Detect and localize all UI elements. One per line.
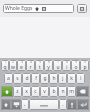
button[interactable]: 3 [17, 60, 26, 71]
staticText: n [61, 88, 65, 95]
button[interactable]: Enter [77, 99, 89, 110]
staticText: 3 [21, 60, 23, 64]
staticText: p [83, 64, 87, 71]
button[interactable]: d [22, 73, 31, 84]
button[interactable]: 5 [35, 60, 44, 71]
staticText: 7 [57, 60, 59, 64]
button[interactable]: 9 [71, 60, 80, 71]
staticText: 2 [12, 60, 14, 64]
button[interactable]: 7 [53, 60, 62, 71]
button[interactable]: m [67, 86, 76, 97]
staticText: e [20, 64, 23, 71]
button[interactable]: h [49, 73, 58, 84]
staticText: g [43, 75, 47, 82]
button[interactable]: . [59, 99, 67, 110]
staticText: o [74, 64, 78, 71]
staticText: 8 [66, 60, 68, 64]
staticText: 6 [48, 60, 50, 64]
staticText: 4 [30, 60, 32, 64]
staticText: y [47, 64, 50, 71]
button[interactable]: x [22, 86, 31, 97]
staticText: . [62, 101, 64, 108]
button[interactable]: Symbols [1, 99, 11, 110]
button[interactable]: a [4, 73, 13, 84]
button[interactable]: 8 [62, 60, 71, 71]
staticText: w [11, 64, 15, 71]
staticText: f [35, 75, 37, 82]
button[interactable]: s [13, 73, 22, 84]
staticText: i [66, 64, 68, 71]
staticText: l [80, 75, 82, 82]
button[interactable]: b [49, 86, 58, 97]
staticText: 5 [39, 60, 41, 64]
button[interactable]: 2 [9, 60, 17, 71]
button[interactable]: Space [29, 99, 59, 110]
staticText: a [7, 75, 10, 82]
button[interactable]: f [31, 73, 40, 84]
button[interactable]: z [13, 86, 22, 97]
staticText: x [25, 88, 28, 95]
staticText: c [34, 88, 37, 95]
button[interactable]: Change keyboard [11, 99, 21, 110]
staticText: , [24, 101, 26, 108]
button[interactable]: , [21, 99, 29, 110]
button[interactable]: k [67, 73, 76, 84]
button[interactable]: c [31, 86, 40, 97]
button[interactable]: 6 [44, 60, 53, 71]
button[interactable]: Voice input [67, 99, 77, 110]
button[interactable]: l [76, 73, 85, 84]
button[interactable]: Whole Eggs [3, 4, 74, 13]
staticText: v [43, 88, 46, 95]
staticText: k [70, 75, 73, 82]
staticText: z [16, 88, 19, 95]
staticText: s [16, 75, 19, 82]
button[interactable]: 4 [26, 60, 35, 71]
button[interactable]: j [58, 73, 67, 84]
staticText: r [29, 64, 32, 71]
staticText: u [56, 64, 60, 71]
button[interactable]: n [58, 86, 67, 97]
button[interactable]: Shift [1, 86, 13, 97]
button[interactable]: v [40, 86, 49, 97]
staticText: t [39, 64, 41, 71]
staticText: h [52, 75, 56, 82]
staticText: 1 [4, 60, 6, 64]
staticText: Whole Eggs [5, 5, 33, 12]
staticText: 0 [84, 60, 86, 64]
button[interactable]: Add [77, 4, 87, 13]
button[interactable]: g [40, 73, 49, 84]
staticText: d [25, 75, 29, 82]
button[interactable]: Backspace [76, 86, 89, 97]
staticText: b [52, 88, 56, 95]
staticText: q [3, 64, 7, 71]
button[interactable]: 1 [1, 60, 9, 71]
staticText: 9 [75, 60, 77, 64]
button[interactable]: 0 [80, 60, 89, 71]
staticText: j [62, 75, 64, 82]
staticText: m [69, 88, 74, 95]
